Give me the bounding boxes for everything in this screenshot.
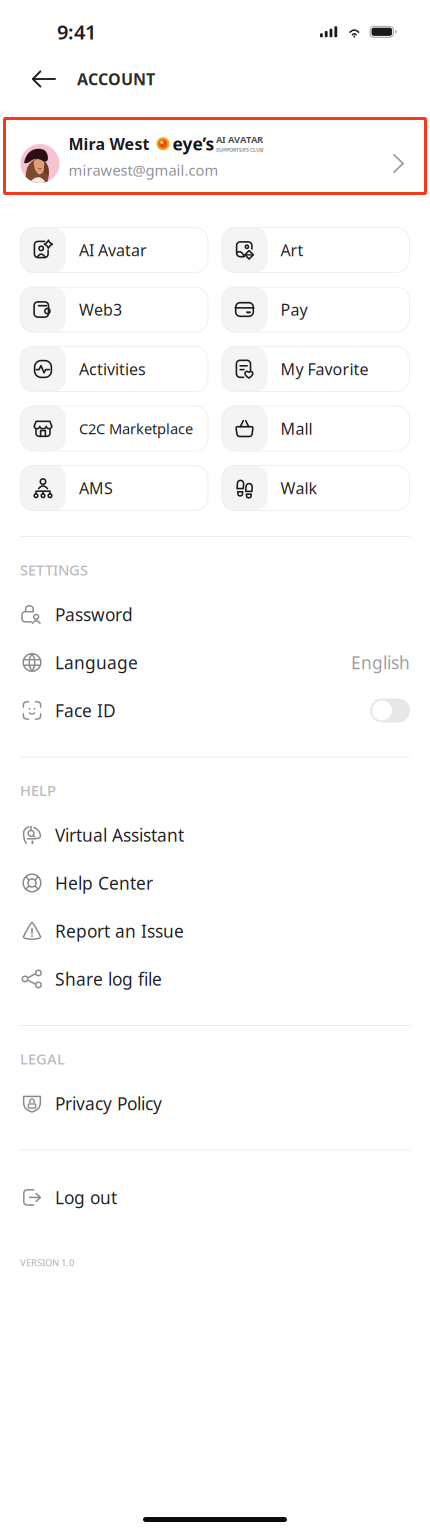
staticText: Mall	[280, 418, 312, 439]
button[interactable]: Mira West	[0, 117, 430, 195]
button[interactable]: Mall	[221, 405, 410, 451]
button[interactable]: Help Center	[0, 859, 430, 907]
button[interactable]: Report an Issue	[0, 907, 430, 955]
staticText: Activities	[79, 358, 146, 380]
staticText: Virtual Assistant	[55, 823, 184, 846]
staticText: SUPPORTER’S CLUB	[216, 146, 264, 153]
staticText: Face ID	[55, 699, 116, 722]
button[interactable]: Share log file	[0, 955, 430, 1003]
button[interactable]: Web3	[20, 286, 208, 332]
button[interactable]: Password	[0, 590, 430, 638]
button[interactable]: Pay	[221, 286, 410, 332]
staticText: Password	[55, 603, 133, 626]
button[interactable]: C2C Marketplace	[20, 405, 208, 451]
staticText: Language	[55, 651, 138, 674]
staticText: HELP	[20, 780, 56, 800]
staticText: 9:41	[57, 18, 96, 45]
staticText: Mira West	[68, 133, 149, 154]
button[interactable]: Art	[221, 227, 410, 273]
staticText: AI Avatar	[79, 239, 147, 261]
staticText: LEGAL	[20, 1049, 65, 1068]
staticText: My Favorite	[280, 358, 368, 380]
button[interactable]: Language	[0, 638, 430, 686]
staticText: Art	[280, 239, 303, 261]
staticText: English	[351, 651, 410, 674]
staticText: AMS	[79, 477, 113, 499]
staticText: eye’s	[172, 132, 214, 155]
staticText: Pay	[280, 299, 307, 320]
button[interactable]: Face ID	[0, 686, 430, 734]
button[interactable]: Virtual Assistant	[0, 811, 430, 859]
staticText: Share log file	[55, 967, 162, 990]
staticText: ACCOUNT	[77, 68, 155, 90]
button[interactable]: Back	[28, 63, 60, 95]
staticText: VERSION 1.0	[20, 1256, 74, 1269]
staticText: C2C Marketplace	[79, 419, 193, 438]
staticText: mirawest@gmail.com	[68, 160, 218, 180]
staticText: AI AVATAR	[216, 133, 263, 146]
staticText: SETTINGS	[20, 560, 88, 579]
button[interactable]: Log out	[0, 1173, 430, 1221]
button[interactable]: Walk	[221, 465, 410, 511]
staticText: Help Center	[55, 871, 153, 894]
staticText: Log out	[55, 1186, 117, 1209]
staticText: Report an Issue	[55, 919, 184, 942]
button[interactable]: AI Avatar	[20, 227, 208, 273]
staticText: Web3	[79, 299, 122, 320]
button[interactable]: Privacy Policy	[0, 1079, 430, 1127]
button[interactable]: Activities	[20, 346, 208, 392]
staticText: Walk	[280, 477, 317, 499]
button[interactable]: My Favorite	[221, 346, 410, 392]
button[interactable]: AMS	[20, 465, 208, 511]
staticText: Privacy Policy	[55, 1092, 162, 1115]
